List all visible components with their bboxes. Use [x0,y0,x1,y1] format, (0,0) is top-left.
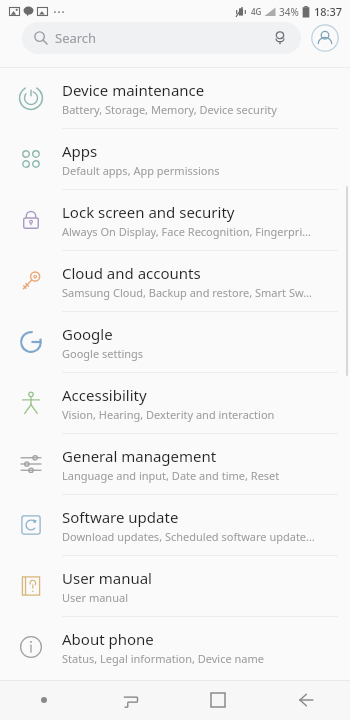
button[interactable]: User manual [0,556,350,616]
button[interactable]: General management [0,434,350,494]
button[interactable]: Device maintenance [0,68,350,128]
button[interactable]: About phone [0,617,350,677]
button[interactable]: Search [22,22,301,54]
button[interactable]: Lock screen and security [0,190,350,250]
button[interactable]: Home [174,680,262,720]
button[interactable]: More [0,680,87,720]
staticText: 18:37 [314,4,343,19]
button[interactable]: Voice search [271,29,289,47]
staticText: 4G [251,6,262,17]
staticText: Battery, Storage, Memory, Device securit… [62,102,277,117]
staticText: 34% [279,5,299,19]
staticText: Language and input, Date and time, Reset [62,468,280,483]
button[interactable]: Software update [0,495,350,555]
button[interactable]: Accessibility [0,373,350,433]
button[interactable]: Apps [0,129,350,189]
staticText: Accessibility [62,385,147,405]
staticText: Status, Legal information, Device name [62,651,265,666]
staticText: Always On Display, Face Recognition, Fin… [62,224,311,239]
staticText: User manual [62,568,152,588]
staticText: Search [55,29,97,47]
staticText: Device maintenance [62,80,205,100]
staticText: Cloud and accounts [62,263,201,283]
button[interactable]: Cloud and accounts [0,251,350,311]
button[interactable]: Account [310,23,340,53]
staticText: Apps [62,141,98,161]
staticText: Google [62,324,113,344]
staticText: User manual [62,590,128,605]
staticText: Software update [62,507,179,527]
button[interactable]: Google [0,312,350,372]
staticText: Download updates, Scheduled software upd… [62,529,315,544]
staticText: Vision, Hearing, Dexterity and interacti… [62,407,275,422]
staticText: About phone [62,629,154,649]
button[interactable]: Back [262,680,350,720]
staticText: Samsung Cloud, Backup and restore, Smart… [62,285,312,300]
staticText: Google settings [62,346,144,361]
staticText: Default apps, App permissions [62,163,220,178]
staticText: General management [62,446,217,466]
button[interactable]: Recents [87,680,174,720]
staticText: Lock screen and security [62,202,235,222]
